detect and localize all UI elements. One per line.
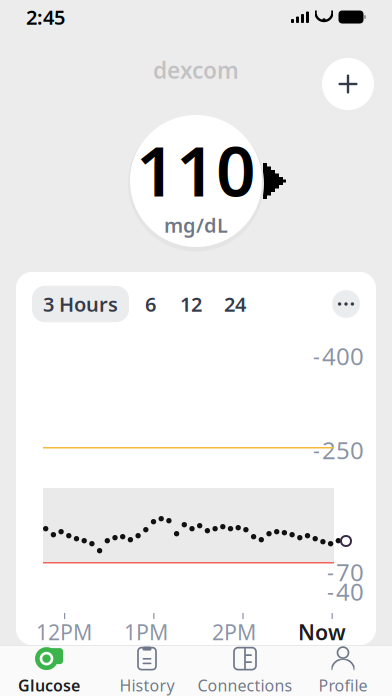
button[interactable]: Profile [294,646,392,696]
button[interactable]: History [98,646,196,696]
staticText: mg/dL [164,212,228,238]
staticText: 3 Hours [43,291,118,317]
staticText: - [313,342,320,370]
staticText: 6 [145,291,156,317]
staticText: Now [298,618,346,646]
staticText: - [313,436,320,464]
staticText: 2:45 [26,4,65,30]
button[interactable]: Connections [196,646,294,696]
staticText: 12 [180,291,202,317]
staticText: 40 [336,576,364,607]
staticText: 2PM [212,618,256,646]
button[interactable]: 12 [172,286,210,322]
staticText: 400 [322,340,364,372]
button[interactable]: More options [332,290,360,318]
staticText: 70 [336,556,364,588]
staticText: 24 [224,291,246,317]
button[interactable]: Glucose [0,646,98,696]
staticText: Connections [197,675,292,696]
staticText: Glucose [18,675,80,696]
staticText: - [327,558,334,586]
button[interactable]: Add [322,58,374,110]
staticText: 1PM [124,618,168,646]
button[interactable]: 3 Hours [32,286,129,322]
staticText: Profile [318,675,367,696]
staticText: 110 [136,124,256,216]
button[interactable]: 24 [216,286,254,322]
button[interactable]: Glucose 110 mg per deciliter, steady [121,106,271,256]
staticText: dexcom [153,55,239,85]
button[interactable]: 6 [135,286,166,322]
staticText: 250 [322,434,364,466]
staticText: 12PM [36,618,92,646]
staticText: History [119,675,174,696]
staticText: - [327,577,334,606]
